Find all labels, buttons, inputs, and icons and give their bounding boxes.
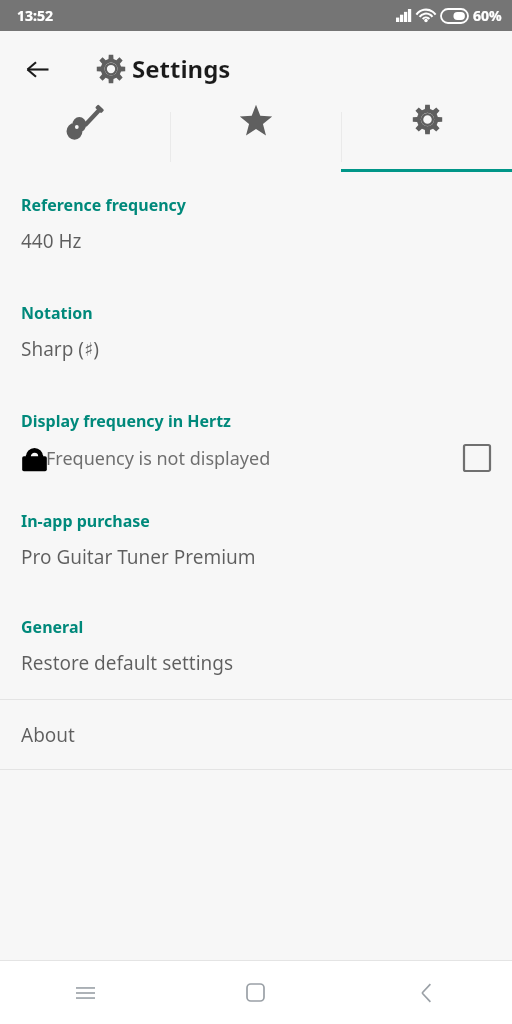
- staticText: General: [21, 616, 84, 638]
- staticText: Notation: [21, 302, 93, 324]
- button[interactable]: Restore default settings: [0, 638, 512, 688]
- staticText: Frequency is not displayed: [46, 446, 271, 471]
- button[interactable]: About: [0, 700, 512, 769]
- staticText: Display frequency in Hertz: [21, 410, 232, 432]
- staticText: Reference frequency: [21, 194, 186, 216]
- button[interactable]: Favorites: [171, 106, 341, 140]
- staticText: 60%: [473, 6, 502, 25]
- staticText: 13:52: [17, 6, 53, 25]
- button[interactable]: Home: [170, 984, 341, 1001]
- button[interactable]: Display frequency checkbox: [464, 445, 490, 471]
- button[interactable]: Settings: [342, 106, 512, 137]
- button[interactable]: Guitar tuner: [0, 106, 170, 144]
- staticText: Restore default settings: [21, 650, 234, 676]
- staticText: 440 Hz: [21, 228, 82, 254]
- button[interactable]: Frequency is not displayed: [0, 432, 512, 484]
- staticText: About: [21, 722, 75, 748]
- staticText: Sharp (♯): [21, 336, 99, 362]
- button[interactable]: Pro Guitar Tuner Premium: [0, 532, 512, 582]
- button[interactable]: Recent apps: [0, 986, 170, 1000]
- staticText: Pro Guitar Tuner Premium: [21, 544, 256, 570]
- button[interactable]: Sharp (♯): [0, 324, 512, 374]
- staticText: Settings: [132, 52, 231, 85]
- button[interactable]: Back: [341, 983, 512, 1003]
- button[interactable]: 440 Hz: [0, 216, 512, 266]
- staticText: In-app purchase: [21, 510, 150, 532]
- button[interactable]: Back: [10, 42, 64, 96]
